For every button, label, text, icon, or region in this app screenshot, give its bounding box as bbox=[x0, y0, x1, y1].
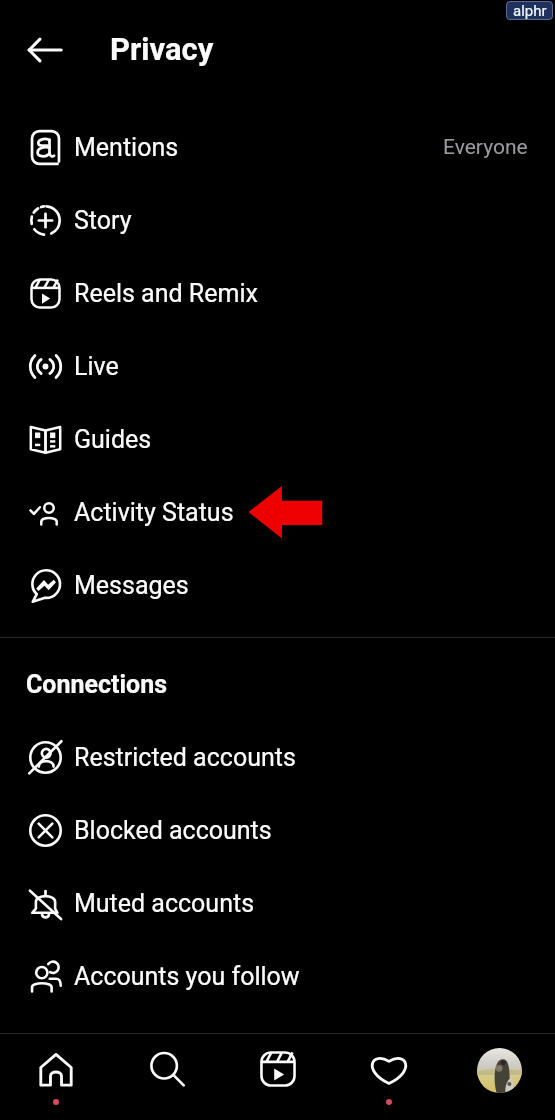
button[interactable]: Activity bbox=[333, 1034, 444, 1120]
staticText: Live bbox=[74, 352, 119, 381]
button[interactable]: Restricted accounts bbox=[0, 721, 555, 794]
button[interactable]: Reels and Remix bbox=[0, 257, 555, 330]
staticText: Restricted accounts bbox=[74, 743, 296, 772]
staticText: Accounts you follow bbox=[74, 962, 300, 991]
staticText: Guides bbox=[74, 425, 152, 454]
button[interactable]: Search bbox=[111, 1034, 222, 1120]
button[interactable]: Muted accounts bbox=[0, 867, 555, 940]
button[interactable]: Home bbox=[0, 1034, 111, 1120]
button[interactable]: Story bbox=[0, 184, 555, 257]
button[interactable]: Accounts you follow bbox=[0, 940, 555, 1013]
staticText: Messages bbox=[74, 571, 189, 600]
button[interactable]: Reels bbox=[222, 1034, 333, 1120]
button[interactable]: Guides bbox=[0, 403, 555, 476]
staticText: Privacy bbox=[110, 31, 214, 67]
button[interactable]: Activity Status bbox=[0, 476, 555, 549]
staticText: Mentions bbox=[74, 133, 179, 162]
button[interactable]: Messages bbox=[0, 549, 555, 622]
staticText: Blocked accounts bbox=[74, 816, 272, 845]
staticText: Activity Status bbox=[74, 498, 234, 527]
staticText: Story bbox=[74, 206, 132, 235]
button[interactable]: Mentions bbox=[0, 111, 555, 184]
staticText: Connections bbox=[26, 670, 168, 699]
staticText: Reels and Remix bbox=[74, 279, 258, 308]
button[interactable]: Profile bbox=[444, 1034, 555, 1120]
button[interactable]: Blocked accounts bbox=[0, 794, 555, 867]
staticText: alphr bbox=[513, 2, 547, 20]
button[interactable]: Back bbox=[13, 18, 77, 82]
staticText: Everyone bbox=[443, 135, 528, 160]
button[interactable]: Live bbox=[0, 330, 555, 403]
staticText: Muted accounts bbox=[74, 889, 255, 918]
